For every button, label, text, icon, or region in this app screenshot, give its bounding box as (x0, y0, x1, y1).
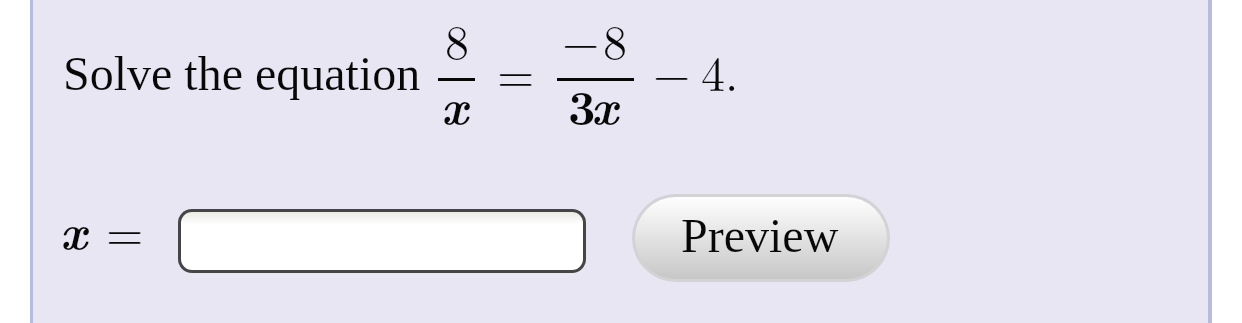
staticText: − (653, 37, 691, 105)
button[interactable]: Answer input field (178, 209, 586, 273)
staticText: x (591, 69, 618, 139)
button[interactable]: Preview (632, 194, 890, 282)
staticText: x (441, 69, 468, 139)
staticText: Preview (681, 209, 839, 262)
staticText: 8 (603, 5, 628, 73)
staticText: x (60, 194, 87, 264)
staticText: − (562, 5, 600, 73)
staticText: 8 (445, 5, 470, 73)
staticText: = (106, 196, 144, 264)
staticText: Solve the equation (63, 47, 421, 100)
staticText: 4. (701, 37, 739, 105)
staticText: 3 (568, 70, 596, 139)
staticText: = (497, 38, 535, 106)
